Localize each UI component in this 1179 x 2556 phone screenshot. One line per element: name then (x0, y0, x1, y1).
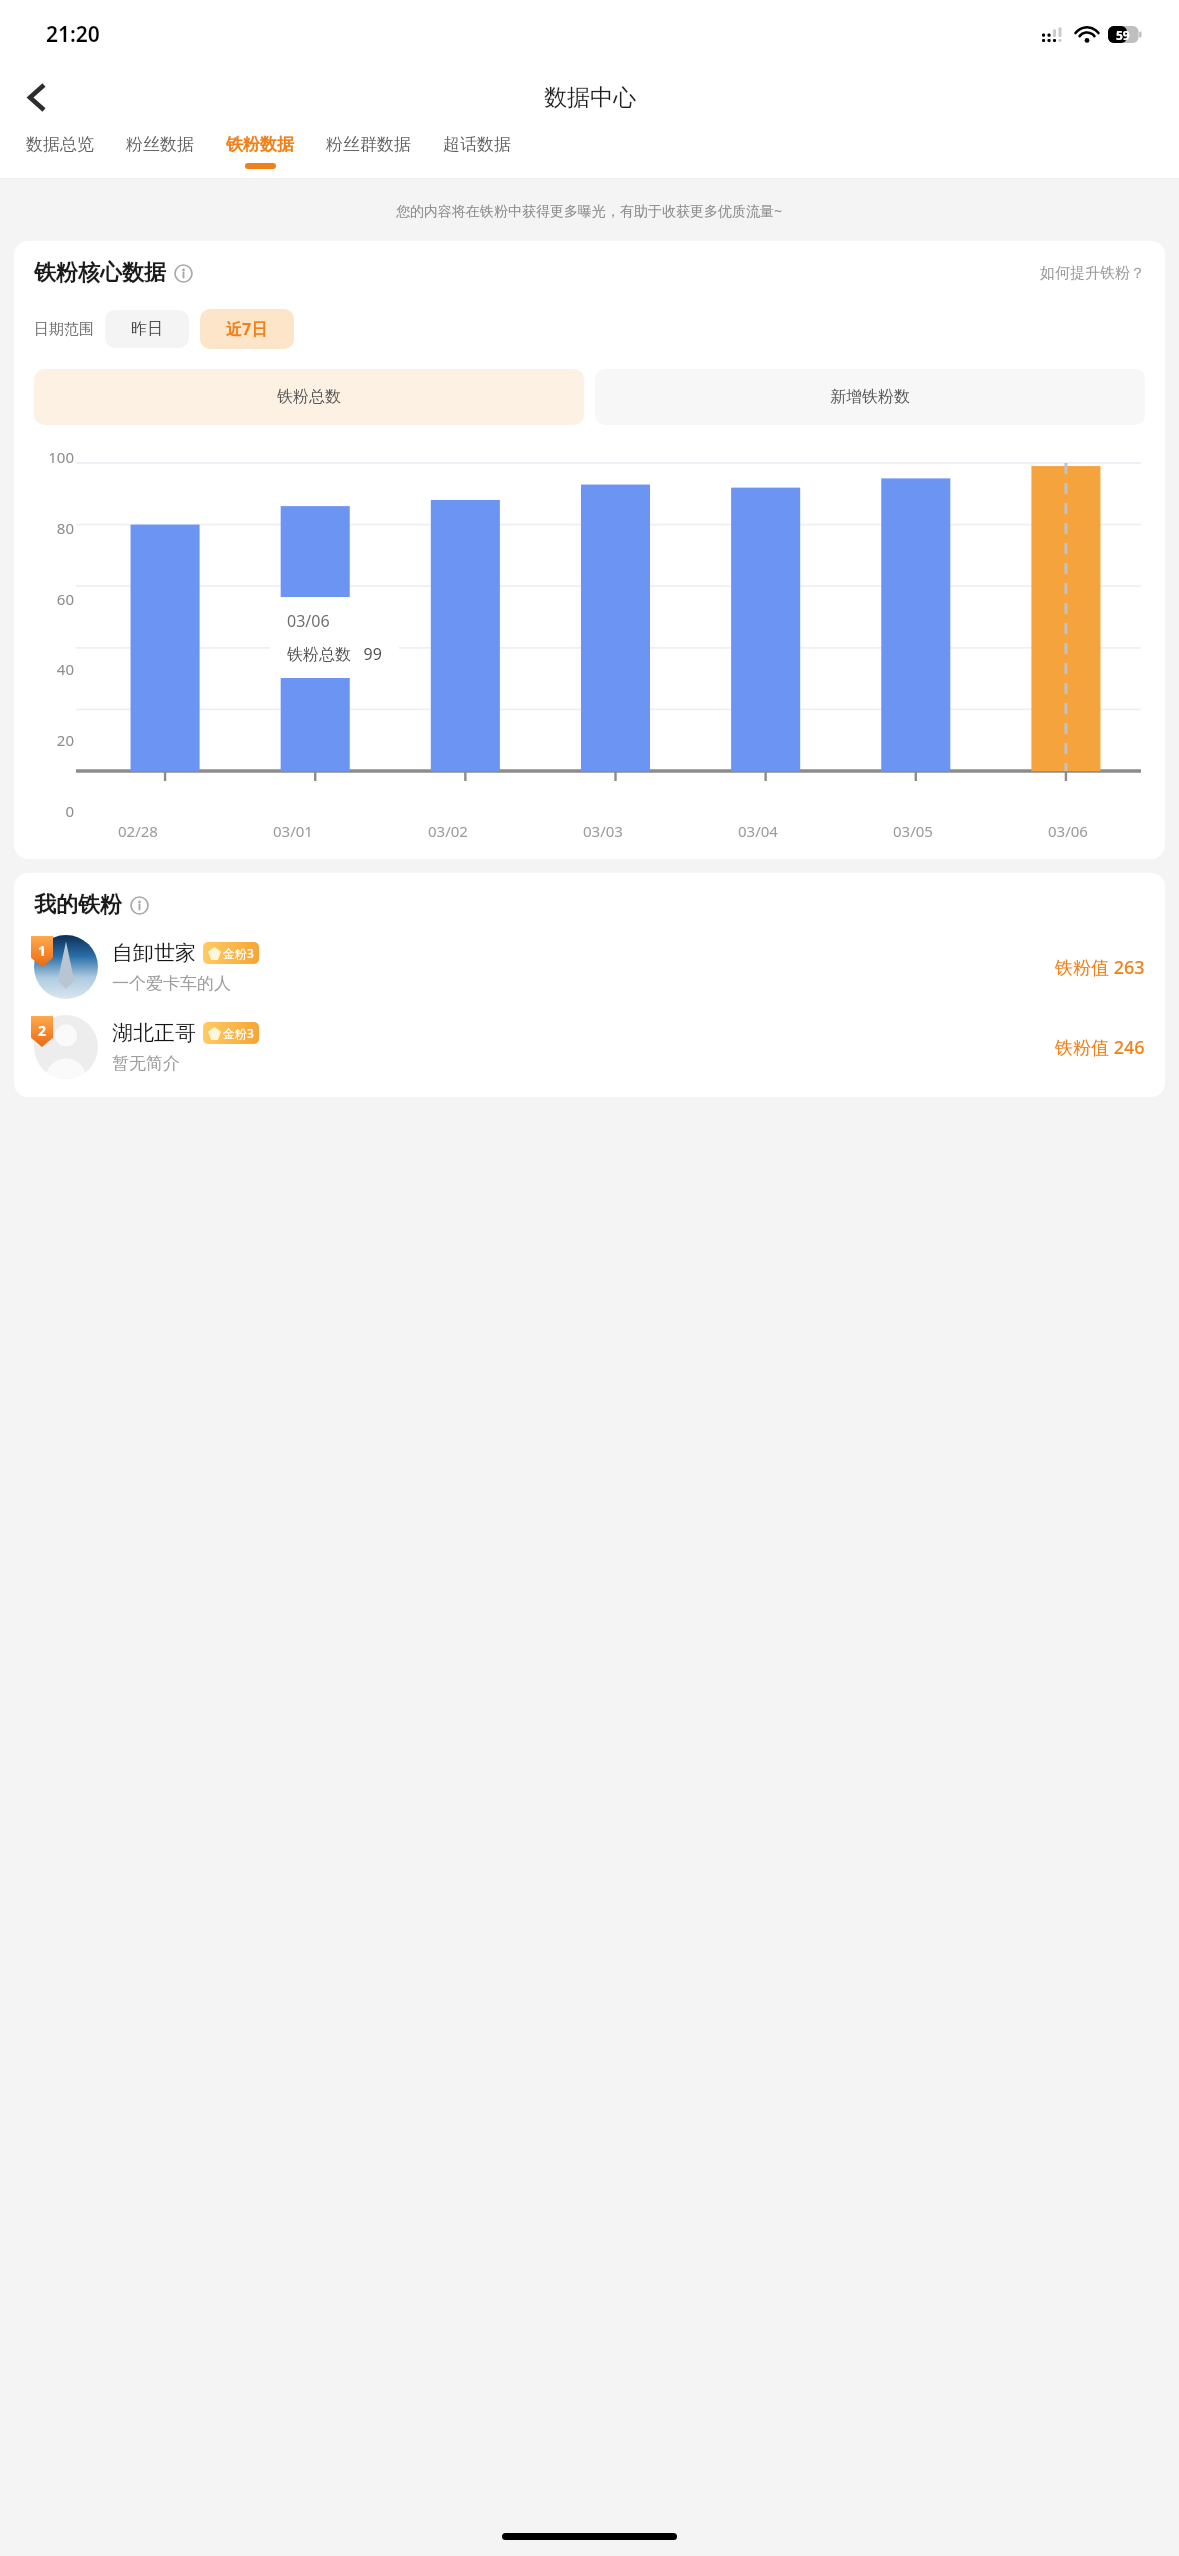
staticText: 自卸世家 (112, 940, 196, 966)
button[interactable]: 1 (34, 935, 1145, 999)
staticText: 新增铁粉数 (830, 387, 910, 407)
button[interactable]: 超话数据 (427, 131, 527, 163)
button[interactable]: 粉丝数据 (110, 131, 210, 163)
staticText: 100 (34, 447, 74, 467)
staticText: 40 (34, 659, 74, 679)
staticText: 60 (34, 589, 74, 609)
staticText: 金粉3 (223, 1025, 254, 1041)
staticText: 59 (1116, 27, 1130, 43)
staticText: 数据总览 (26, 134, 94, 155)
staticText: 03/04 (738, 821, 778, 841)
staticText: 超话数据 (443, 134, 511, 155)
staticText: 21:20 (46, 20, 100, 49)
staticText: 1 (38, 941, 47, 960)
staticText: 80 (34, 518, 74, 538)
staticText: 铁粉值 263 (1055, 955, 1145, 980)
staticText: 20 (34, 730, 74, 750)
staticText: 03/02 (428, 821, 468, 841)
button[interactable]: 昨日 (105, 310, 189, 348)
staticText: 铁粉数据 (226, 134, 294, 155)
staticText: 03/03 (583, 821, 623, 841)
staticText: 03/01 (273, 821, 313, 841)
button[interactable]: 如何提升铁粉？ (1040, 264, 1145, 283)
staticText: 铁粉值 246 (1055, 1035, 1145, 1060)
staticText: 如何提升铁粉？ (1040, 264, 1145, 283)
staticText: 数据中心 (544, 83, 636, 112)
button[interactable]: 粉丝群数据 (310, 131, 427, 163)
staticText: 2 (38, 1021, 47, 1040)
staticText: 一个爱卡车的人 (112, 973, 231, 994)
staticText: 近7日 (226, 318, 268, 340)
button[interactable]: 近7日 (200, 309, 294, 349)
staticText: 日期范围 (34, 320, 94, 339)
staticText: 02/28 (118, 821, 158, 841)
staticText: 粉丝数据 (126, 134, 194, 155)
staticText: 暂无简介 (112, 1053, 180, 1074)
button[interactable]: 2 (34, 1015, 1145, 1079)
button[interactable]: Back (8, 69, 64, 125)
staticText: 湖北正哥 (112, 1020, 196, 1046)
staticText: 粉丝群数据 (326, 134, 411, 155)
staticText: 0 (34, 801, 74, 821)
staticText: 03/06 (287, 610, 330, 632)
staticText: 03/06 (1048, 821, 1088, 841)
button[interactable]: 数据总览 (10, 131, 110, 163)
staticText: 铁粉总数 99 (287, 643, 382, 665)
staticText: 铁粉总数 (277, 387, 341, 407)
button[interactable]: 铁粉数据 (210, 131, 310, 169)
button[interactable]: 铁粉总数 (34, 369, 584, 425)
staticText: 金粉3 (223, 945, 254, 961)
staticText: 03/05 (893, 821, 933, 841)
staticText: 我的铁粉 (34, 891, 122, 919)
staticText: 铁粉核心数据 (34, 259, 166, 287)
button[interactable]: 新增铁粉数 (595, 369, 1145, 425)
staticText: 您的内容将在铁粉中获得更多曝光，有助于收获更多优质流量~ (396, 201, 783, 220)
staticText: 昨日 (131, 319, 163, 339)
